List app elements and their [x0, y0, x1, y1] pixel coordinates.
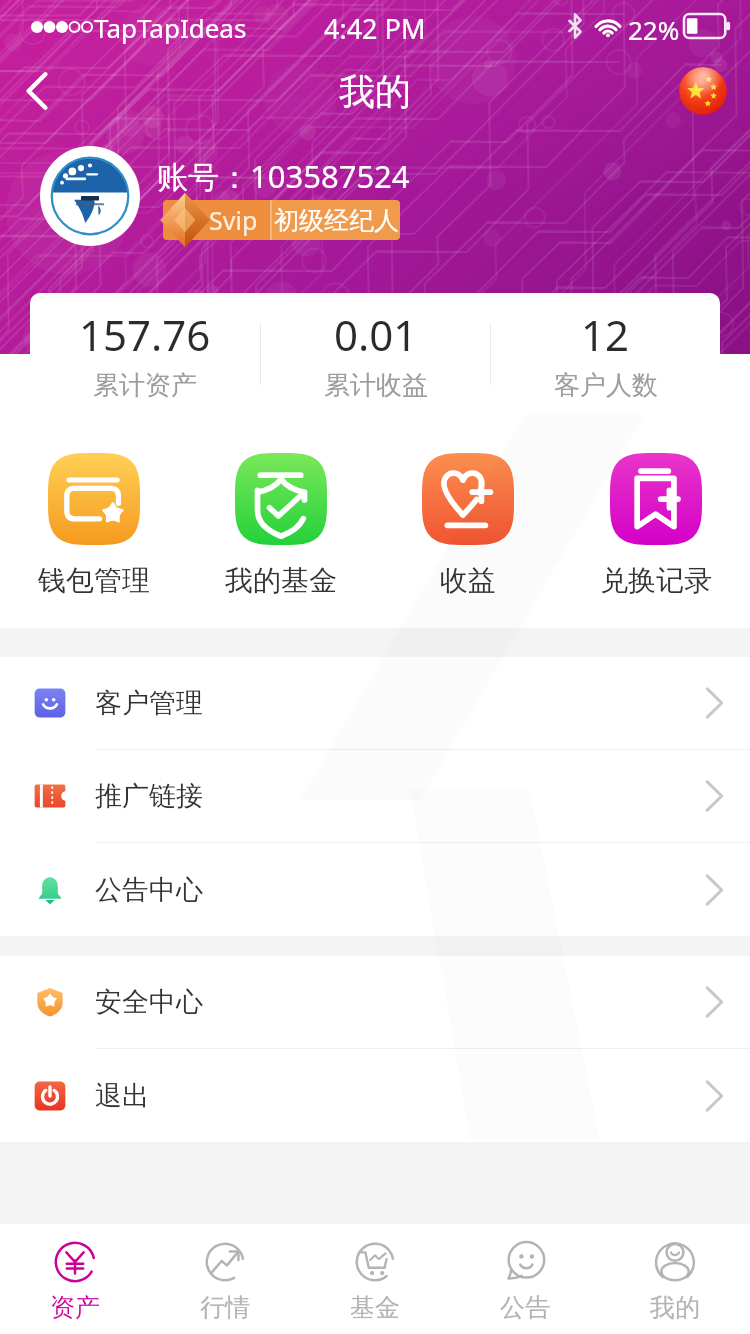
button[interactable]: 公告	[450, 1224, 600, 1334]
button[interactable]: 我的	[600, 1224, 750, 1334]
staticText: 累计资产	[93, 369, 197, 402]
staticText: 客户管理	[95, 686, 203, 720]
staticText: 4:42 PM	[324, 10, 426, 47]
button[interactable]: 行情	[150, 1224, 300, 1334]
button[interactable]: Back	[6, 60, 68, 122]
staticText: 公告	[500, 1292, 550, 1323]
staticText: 我的	[339, 69, 411, 114]
button[interactable]: 钱包管理	[0, 420, 187, 598]
button[interactable]: 收益	[374, 420, 562, 598]
button[interactable]: 我的基金	[187, 420, 374, 598]
button[interactable]: 兑换记录	[562, 420, 750, 598]
button[interactable]: Language	[679, 67, 727, 115]
button[interactable]: 退出	[0, 1049, 750, 1142]
button[interactable]: Svip	[163, 200, 400, 240]
button[interactable]: 基金	[300, 1224, 450, 1334]
button[interactable]: Avatar	[40, 146, 140, 246]
button[interactable]: 公告中心	[0, 843, 750, 936]
staticText: 资产	[50, 1292, 100, 1323]
staticText: 退出	[95, 1079, 149, 1113]
staticText: 收益	[440, 563, 496, 598]
staticText: 公告中心	[95, 873, 203, 907]
staticText: 我的基金	[225, 563, 337, 598]
staticText: 兑换记录	[600, 563, 712, 598]
staticText: 推广链接	[95, 779, 203, 813]
staticText: 钱包管理	[38, 563, 150, 598]
staticText: 我的	[650, 1292, 700, 1323]
button[interactable]: 0.01	[261, 293, 490, 415]
staticText: 账号：103587524	[157, 155, 410, 197]
staticText: 157.76	[79, 306, 211, 363]
staticText: 累计收益	[324, 369, 428, 402]
button[interactable]: 安全中心	[0, 956, 750, 1049]
staticText: 22%	[628, 12, 680, 47]
button[interactable]: 157.76	[30, 293, 260, 415]
staticText: 12	[581, 306, 630, 363]
staticText: 安全中心	[95, 985, 203, 1019]
staticText: 0.01	[334, 306, 418, 363]
staticText: 客户人数	[554, 369, 658, 402]
button[interactable]: 推广链接	[0, 750, 750, 843]
button[interactable]: 12	[491, 293, 720, 415]
button[interactable]: 客户管理	[0, 657, 750, 750]
staticText: 行情	[200, 1292, 250, 1323]
staticText: 初级经纪人	[274, 205, 399, 236]
staticText: Svip	[209, 203, 258, 237]
button[interactable]: 资产	[0, 1224, 150, 1334]
staticText: 基金	[350, 1292, 400, 1323]
staticText: TapTapIdeas	[94, 10, 247, 45]
